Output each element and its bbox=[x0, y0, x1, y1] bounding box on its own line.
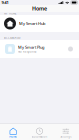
staticText: Home bbox=[9, 135, 17, 138]
staticText: Home bbox=[32, 5, 47, 12]
button[interactable]: Automation bbox=[26, 124, 53, 140]
staticText: My Smart Hub bbox=[19, 21, 45, 26]
button[interactable]: Settings bbox=[53, 124, 79, 140]
staticText: Settings bbox=[60, 135, 71, 138]
staticText: Automation bbox=[31, 135, 47, 138]
staticText: 9:41 bbox=[1, 0, 8, 5]
button[interactable]: Home bbox=[0, 124, 26, 140]
staticText: My Smart Plug bbox=[18, 45, 44, 50]
staticText: MY HOME bbox=[4, 12, 16, 15]
button[interactable]: My Smart Hub bbox=[0, 15, 79, 32]
button[interactable]: My Smart Plug bbox=[0, 40, 79, 58]
staticText: No Response bbox=[18, 50, 37, 53]
staticText: ACCESSORIES bbox=[4, 36, 20, 39]
